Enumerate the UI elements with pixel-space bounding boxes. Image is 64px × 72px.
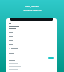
staticText: account sign up xyxy=(23,8,42,11)
button[interactable]: Continue xyxy=(48,57,54,59)
staticText: Fast, secure xyxy=(25,4,39,7)
